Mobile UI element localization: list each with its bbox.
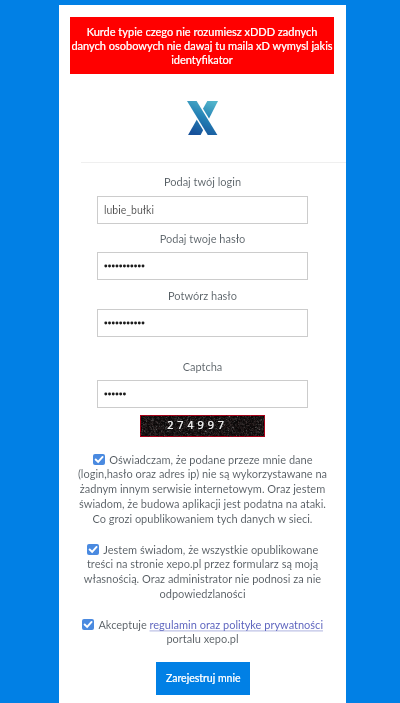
staticText: 274997 [167,417,228,432]
button[interactable]: Zaznacz zgodę [82,619,94,630]
staticText: Podaj twój login [59,175,346,188]
button[interactable]: Zaznacz zgodę [93,454,105,465]
button[interactable]: lubie_bułki [97,196,308,224]
button[interactable]: Zaznacz zgodę [87,544,99,555]
staticText: [x] Jestem świadom, że wszystkie opublik… [73,543,332,600]
staticText: Podaj twoje hasło [59,232,346,245]
staticText: Kurde typie czego nie rozumiesz xDDD zad… [70,25,334,66]
staticText: lubie_bułki [104,204,154,217]
staticText: Potwórz hasło [59,289,346,302]
staticText: Zarejestruj mnie [166,672,241,685]
button[interactable] [97,252,308,280]
staticText: Captcha [59,360,346,373]
staticText: [x] Oświadczam, że podane przeze mnie da… [73,453,332,525]
button[interactable]: Zarejestruj mnie [156,662,250,695]
staticText: [x] Akceptuje regulamin oraz polityke pr… [73,618,332,645]
button[interactable] [97,380,308,408]
button[interactable] [97,309,308,337]
